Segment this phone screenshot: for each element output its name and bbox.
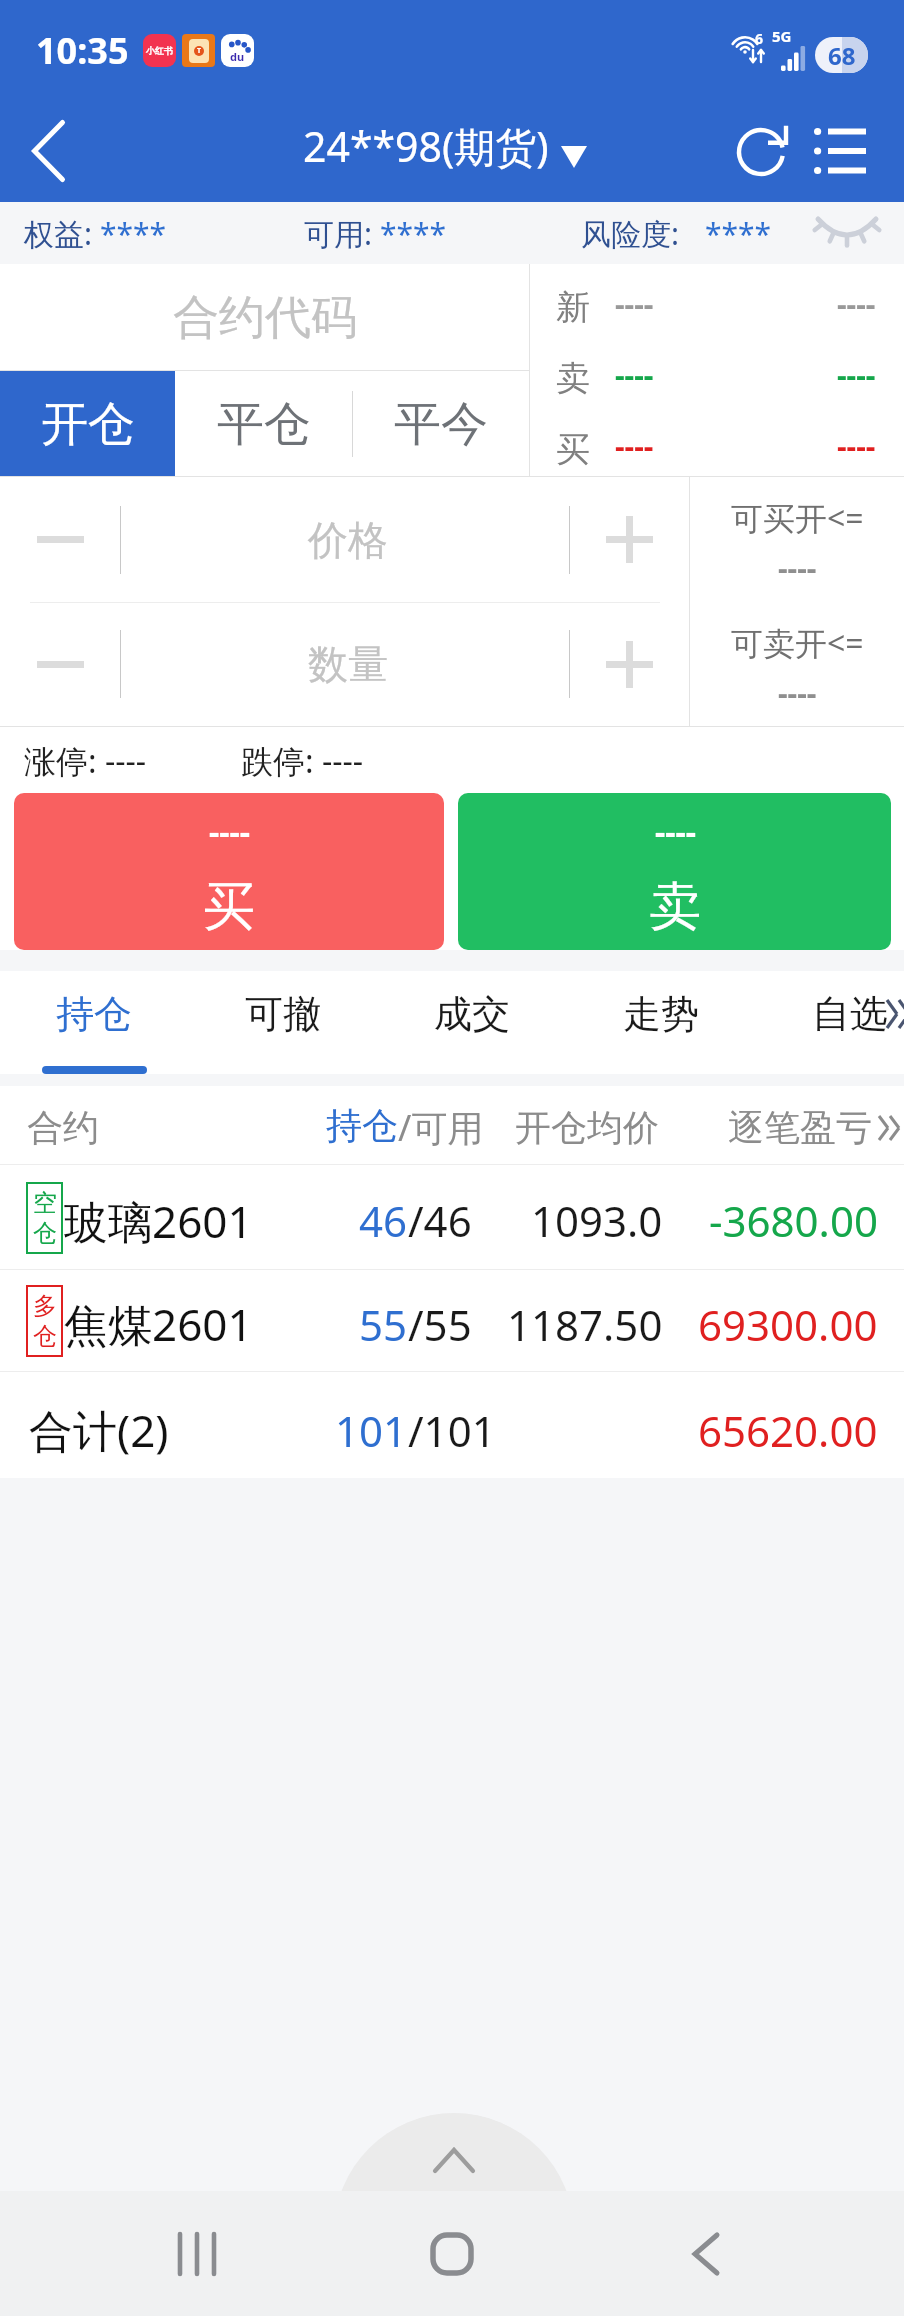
- staticText: 卖: [556, 357, 590, 400]
- staticText: 69300.00: [698, 1296, 878, 1353]
- staticText: 走势: [623, 990, 699, 1038]
- button[interactable]: ----: [458, 793, 891, 950]
- staticText: ----: [615, 283, 654, 324]
- staticText: 卖: [649, 874, 701, 940]
- staticText: 买: [556, 428, 590, 471]
- staticText: 数量: [308, 639, 388, 689]
- staticText: du: [230, 49, 245, 64]
- button[interactable]: 可撤: [188, 971, 377, 1074]
- staticText: 自选: [812, 990, 888, 1038]
- button[interactable]: 自选: [755, 971, 904, 1074]
- button[interactable]: 数量: [124, 602, 572, 726]
- button[interactable]: Menu: [800, 111, 880, 191]
- staticText: /46: [408, 1192, 472, 1249]
- button[interactable]: Back: [646, 2191, 766, 2316]
- staticText: 小红书: [146, 45, 173, 56]
- staticText: 多: [33, 1291, 57, 1321]
- button[interactable]: 多: [0, 1270, 904, 1372]
- staticText: 权益:: [24, 213, 100, 254]
- button[interactable]: Increase 价格: [570, 477, 689, 602]
- staticText: 可卖开<=: [731, 621, 864, 665]
- staticText: 可用:: [304, 213, 380, 254]
- button[interactable]: Increase 数量: [570, 602, 689, 726]
- staticText: 价格: [308, 515, 388, 565]
- staticText: 持仓: [56, 990, 132, 1038]
- staticText: 玻璃2601: [64, 1191, 253, 1251]
- staticText: 合约代码: [173, 289, 357, 347]
- staticText: ----: [615, 354, 654, 395]
- button[interactable]: 开仓: [0, 371, 175, 477]
- staticText: 平今: [394, 395, 488, 454]
- staticText: 合约: [27, 1105, 99, 1150]
- staticText: 买: [203, 874, 255, 940]
- button[interactable]: 价格: [124, 477, 572, 602]
- staticText: 可撤: [245, 990, 321, 1038]
- staticText: 可买开<=: [731, 496, 864, 540]
- staticText: /55: [408, 1296, 472, 1353]
- button[interactable]: 平仓: [175, 371, 352, 477]
- staticText: 10:35: [36, 26, 129, 75]
- staticText: ----: [778, 547, 817, 588]
- staticText: ****: [380, 213, 447, 254]
- staticText: ----: [837, 425, 876, 466]
- button[interactable]: Decrease 价格: [0, 477, 120, 602]
- button[interactable]: 走势: [566, 971, 755, 1074]
- staticText: ****: [705, 213, 772, 254]
- staticText: -3680.00: [709, 1192, 878, 1249]
- staticText: 逐笔盈亏: [728, 1105, 872, 1150]
- staticText: 65620.00: [698, 1402, 878, 1459]
- staticText: 开仓: [41, 395, 135, 454]
- staticText: 成交: [434, 990, 510, 1038]
- staticText: 55: [359, 1296, 408, 1353]
- staticText: 46: [359, 1192, 408, 1249]
- button[interactable]: 空: [0, 1165, 904, 1270]
- staticText: 空: [33, 1188, 57, 1218]
- staticText: ----: [778, 672, 817, 713]
- button[interactable]: ----: [14, 793, 444, 950]
- staticText: ****: [100, 213, 167, 254]
- button[interactable]: 持仓: [0, 971, 188, 1074]
- staticText: ----: [655, 810, 696, 854]
- button[interactable]: Back: [0, 100, 96, 202]
- staticText: ----: [209, 810, 250, 854]
- button[interactable]: Recents: [140, 2191, 260, 2316]
- button[interactable]: 合约代码: [0, 264, 529, 371]
- staticText: ----: [837, 283, 876, 324]
- staticText: 风险度:: [581, 213, 687, 254]
- staticText: 跌停: ----: [241, 739, 364, 783]
- staticText: 1187.50: [507, 1296, 663, 1353]
- staticText: ----: [837, 354, 876, 395]
- button[interactable]: 平今: [352, 371, 529, 477]
- staticText: 仓: [33, 1218, 57, 1248]
- staticText: 24**98(期货): [303, 118, 549, 174]
- staticText: 68: [828, 39, 856, 72]
- staticText: /可用: [398, 1103, 484, 1152]
- button[interactable]: 成交: [377, 971, 566, 1074]
- staticText: 焦煤2601: [64, 1294, 253, 1354]
- staticText: 涨停: ----: [24, 739, 147, 783]
- staticText: 持仓: [326, 1103, 398, 1148]
- staticText: 合计(2): [29, 1400, 169, 1460]
- staticText: ----: [615, 425, 654, 466]
- staticText: 5G: [772, 26, 792, 46]
- staticText: 开仓均价: [515, 1105, 659, 1150]
- staticText: T: [197, 46, 202, 56]
- button[interactable]: Decrease 数量: [0, 602, 120, 726]
- staticText: 仓: [33, 1321, 57, 1351]
- staticText: 新: [556, 286, 590, 329]
- button[interactable]: Refresh: [721, 111, 801, 191]
- staticText: 平仓: [217, 395, 311, 454]
- staticText: 6: [755, 29, 764, 48]
- button[interactable]: Home: [392, 2191, 512, 2316]
- button[interactable]: Toggle balance visibility: [810, 207, 884, 259]
- staticText: /101: [408, 1402, 496, 1459]
- staticText: 101: [335, 1402, 408, 1459]
- staticText: 1093.0: [531, 1192, 663, 1249]
